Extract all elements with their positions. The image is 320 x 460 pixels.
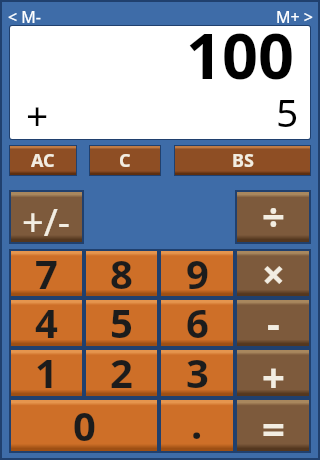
button[interactable]: 0 [11, 400, 157, 451]
staticText: + [262, 349, 285, 395]
staticText: = [262, 401, 285, 452]
button[interactable]: +/- [11, 192, 82, 242]
staticText: 5 [110, 295, 133, 341]
staticText: 0 [73, 398, 96, 449]
button[interactable]: 1 [11, 350, 82, 396]
button[interactable]: < M- [8, 6, 41, 28]
staticText: 3 [186, 345, 209, 391]
staticText: 5 [276, 85, 299, 138]
staticText: 7 [35, 246, 58, 291]
button[interactable]: 2 [86, 350, 157, 396]
button[interactable]: . [161, 400, 233, 451]
button[interactable]: C [90, 146, 160, 175]
button[interactable]: ÷ [237, 192, 309, 242]
staticText: AC [31, 148, 55, 173]
button[interactable]: 9 [161, 251, 233, 296]
staticText: 1 [35, 345, 58, 391]
staticText: +/- [22, 195, 71, 245]
staticText: × [262, 246, 285, 291]
button[interactable]: × [237, 251, 309, 296]
staticText: . [191, 396, 203, 447]
button[interactable]: - [237, 300, 309, 346]
staticText: 8 [110, 246, 133, 291]
staticText: 4 [35, 295, 58, 341]
button[interactable]: BS [175, 146, 310, 175]
button[interactable]: + [237, 350, 309, 396]
staticText: - [267, 295, 280, 341]
button[interactable]: 6 [161, 300, 233, 346]
staticText: 2 [110, 345, 133, 391]
staticText: ÷ [262, 188, 285, 238]
button[interactable]: 7 [11, 251, 82, 296]
staticText: 9 [186, 246, 209, 291]
staticText: + [26, 88, 49, 141]
button[interactable]: 3 [161, 350, 233, 396]
button[interactable]: 8 [86, 251, 157, 296]
staticText: 100 [186, 12, 295, 98]
staticText: BS [232, 148, 254, 173]
button[interactable]: M+ > [276, 6, 313, 28]
button[interactable]: 5 [86, 300, 157, 346]
button[interactable]: = [237, 400, 309, 451]
button[interactable]: AC [10, 146, 76, 175]
staticText: 6 [186, 295, 209, 341]
staticText: C [119, 148, 131, 173]
button[interactable]: 4 [11, 300, 82, 346]
